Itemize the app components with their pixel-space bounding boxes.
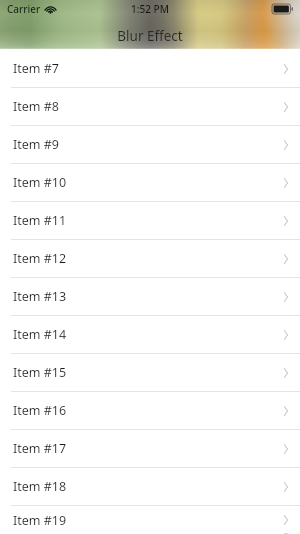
staticText: Carrier bbox=[7, 2, 41, 16]
staticText: Item #16 bbox=[13, 402, 67, 419]
button[interactable]: Item #17 bbox=[0, 430, 300, 467]
staticText: Item #11 bbox=[13, 212, 67, 229]
button[interactable]: Item #12 bbox=[0, 240, 300, 277]
button[interactable]: Item #9 bbox=[0, 126, 300, 163]
button[interactable]: Item #11 bbox=[0, 202, 300, 239]
staticText: 1:52 PM bbox=[131, 2, 169, 16]
staticText: Item #12 bbox=[13, 250, 67, 267]
staticText: Item #13 bbox=[13, 288, 67, 305]
button[interactable]: Item #16 bbox=[0, 392, 300, 429]
button[interactable]: Item #19 bbox=[0, 506, 300, 534]
button[interactable]: Item #7 bbox=[0, 50, 300, 87]
staticText: Item #10 bbox=[13, 174, 67, 191]
staticText: Item #18 bbox=[13, 478, 67, 495]
staticText: Item #19 bbox=[13, 512, 67, 529]
staticText: Item #15 bbox=[13, 364, 67, 381]
button[interactable]: Item #10 bbox=[0, 164, 300, 201]
button[interactable]: Item #18 bbox=[0, 468, 300, 505]
button[interactable]: Item #14 bbox=[0, 316, 300, 353]
staticText: Blur Effect bbox=[117, 27, 183, 45]
staticText: Item #9 bbox=[13, 136, 59, 153]
button[interactable]: Item #8 bbox=[0, 88, 300, 125]
staticText: Item #14 bbox=[13, 326, 67, 343]
staticText: Item #7 bbox=[13, 60, 59, 77]
staticText: Item #8 bbox=[13, 98, 59, 115]
button[interactable]: Item #15 bbox=[0, 354, 300, 391]
button[interactable]: Item #13 bbox=[0, 278, 300, 315]
staticText: Item #17 bbox=[13, 440, 67, 457]
